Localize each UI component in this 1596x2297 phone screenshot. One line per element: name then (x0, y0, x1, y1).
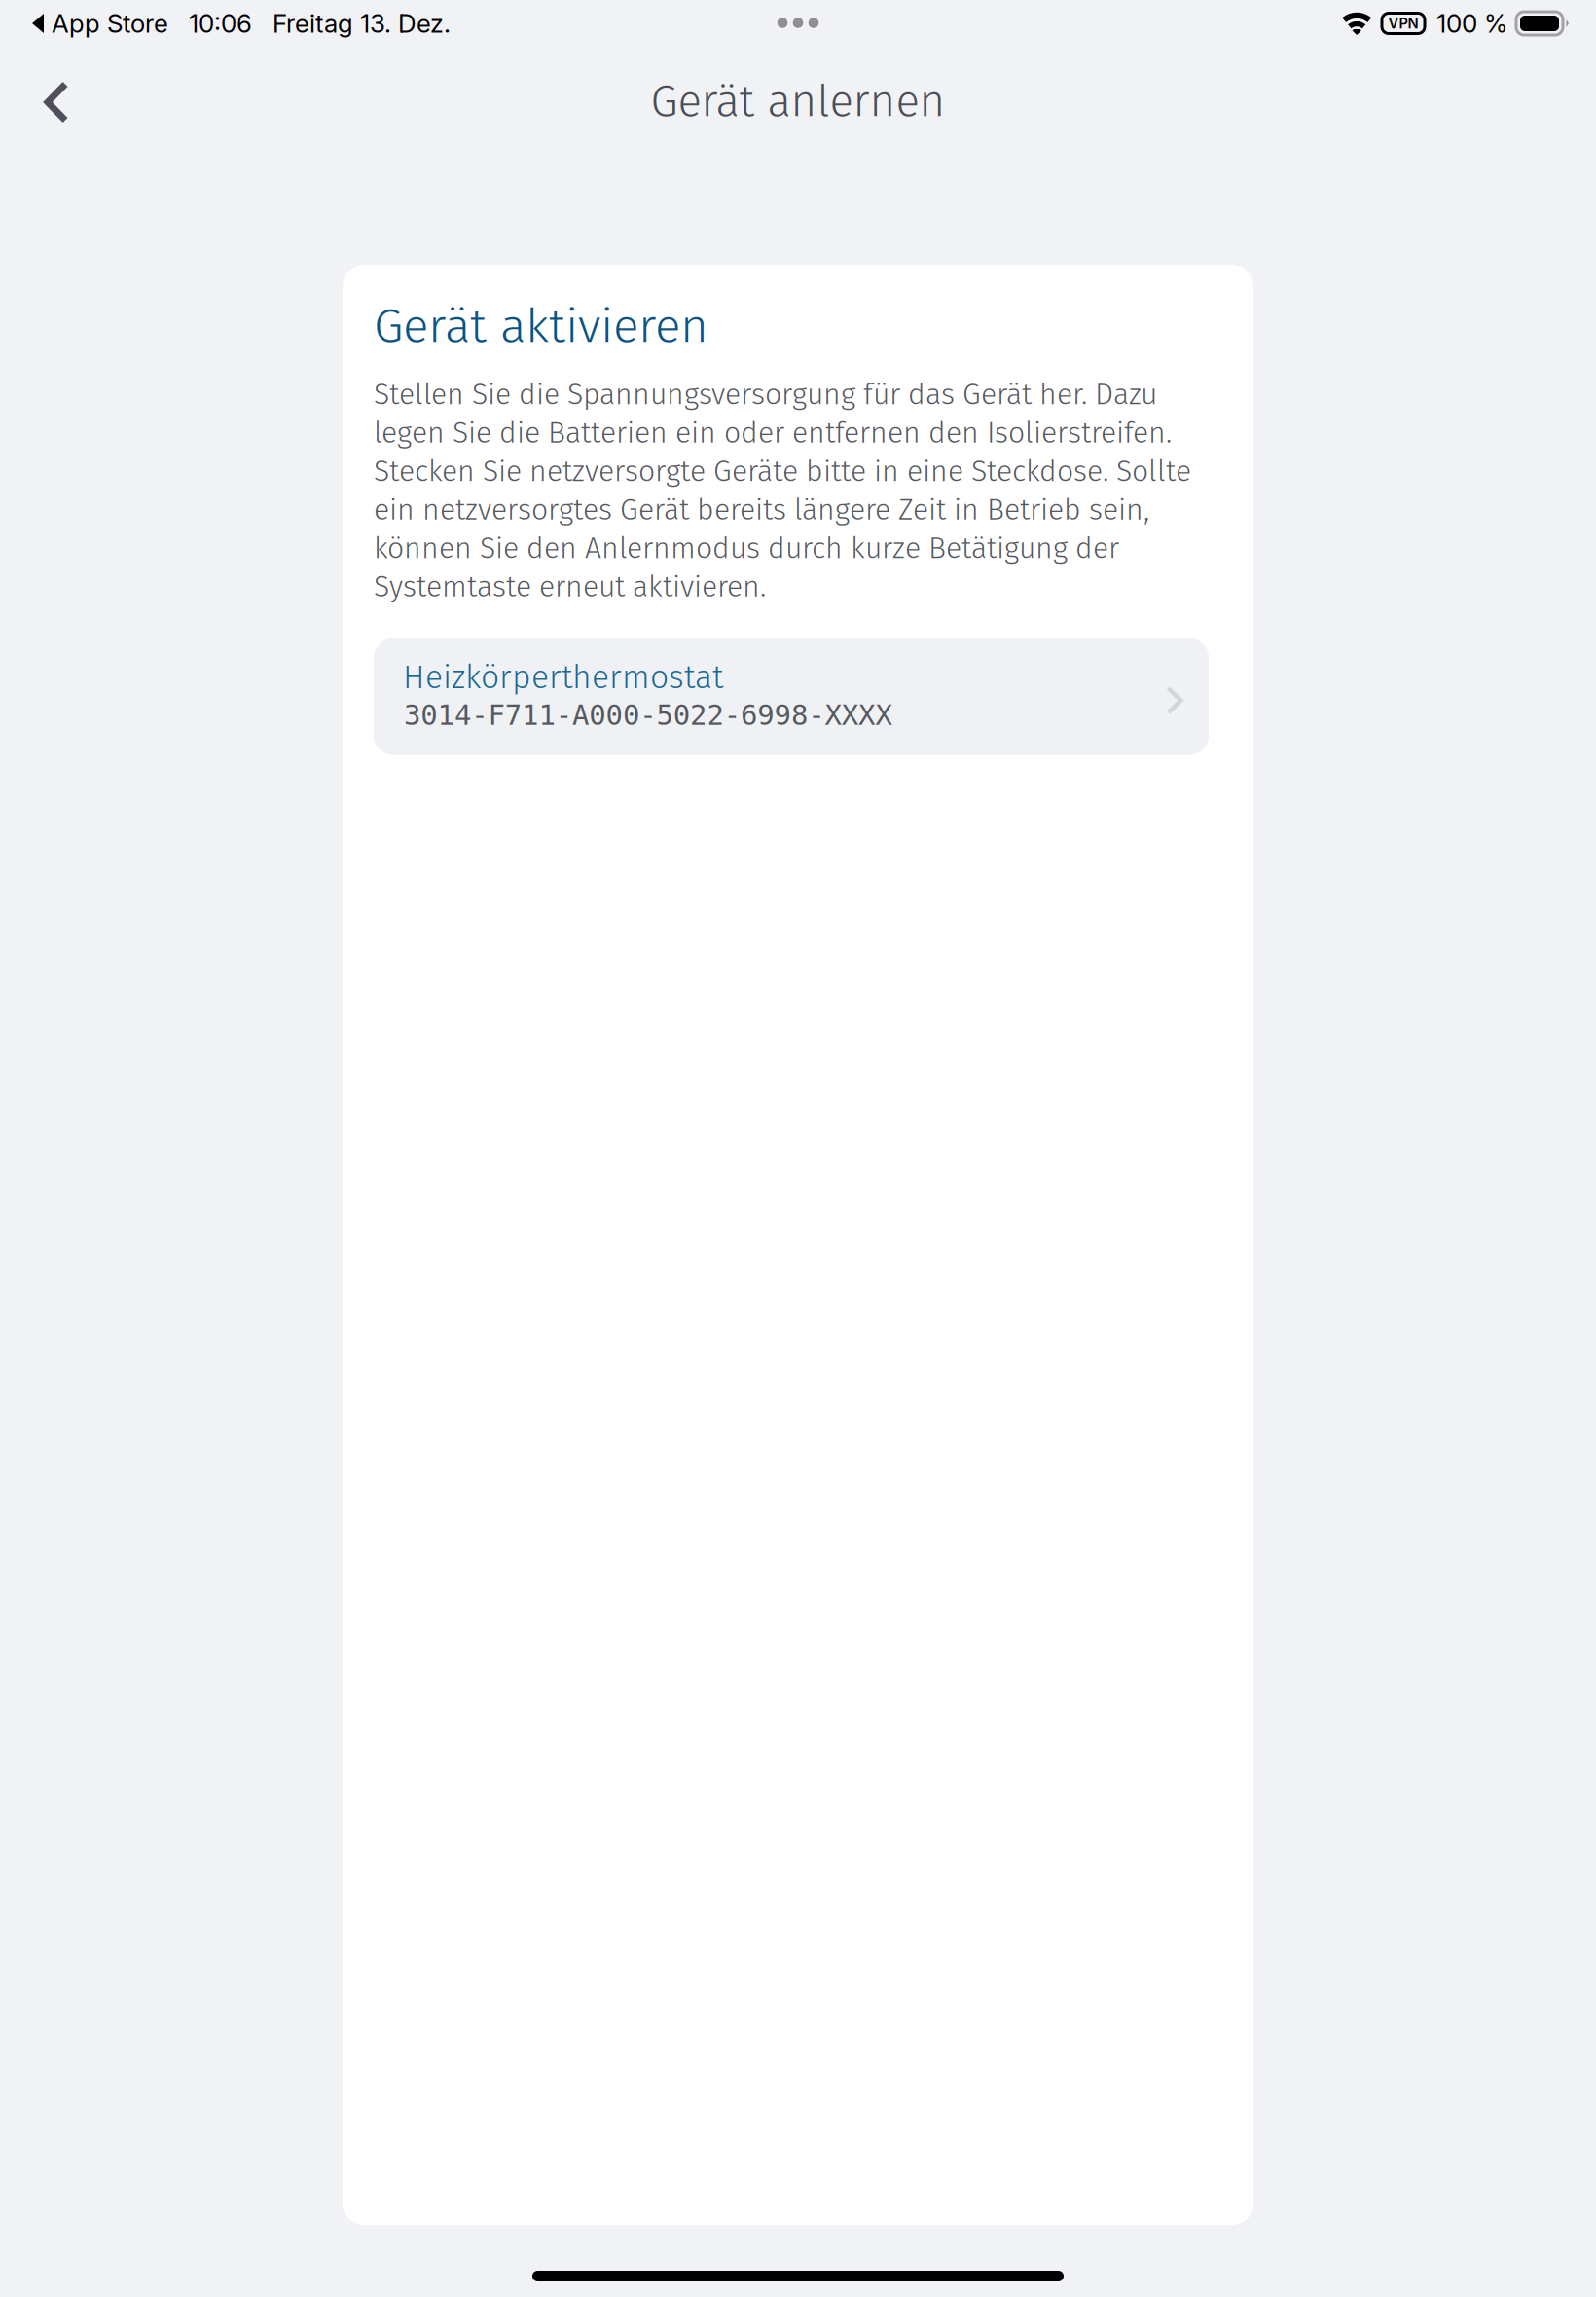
staticText: Heizkörperthermostat (403, 658, 723, 697)
staticText: Stellen Sie die Spannungsversorgung für … (374, 377, 1191, 604)
staticText: 100 % (1436, 8, 1507, 39)
staticText: 3014-F711-A000-5022-6998-XXXX (404, 699, 892, 732)
staticText: Gerät anlernen (651, 75, 945, 128)
staticText: App Store 10:06 Freitag 13. Dez. (45, 8, 451, 39)
button[interactable]: Zurück (8, 54, 105, 151)
staticText: VPN (1388, 15, 1418, 32)
button[interactable]: Heizkörperthermostat (374, 638, 1209, 755)
staticText: Gerät aktivieren (374, 297, 708, 354)
